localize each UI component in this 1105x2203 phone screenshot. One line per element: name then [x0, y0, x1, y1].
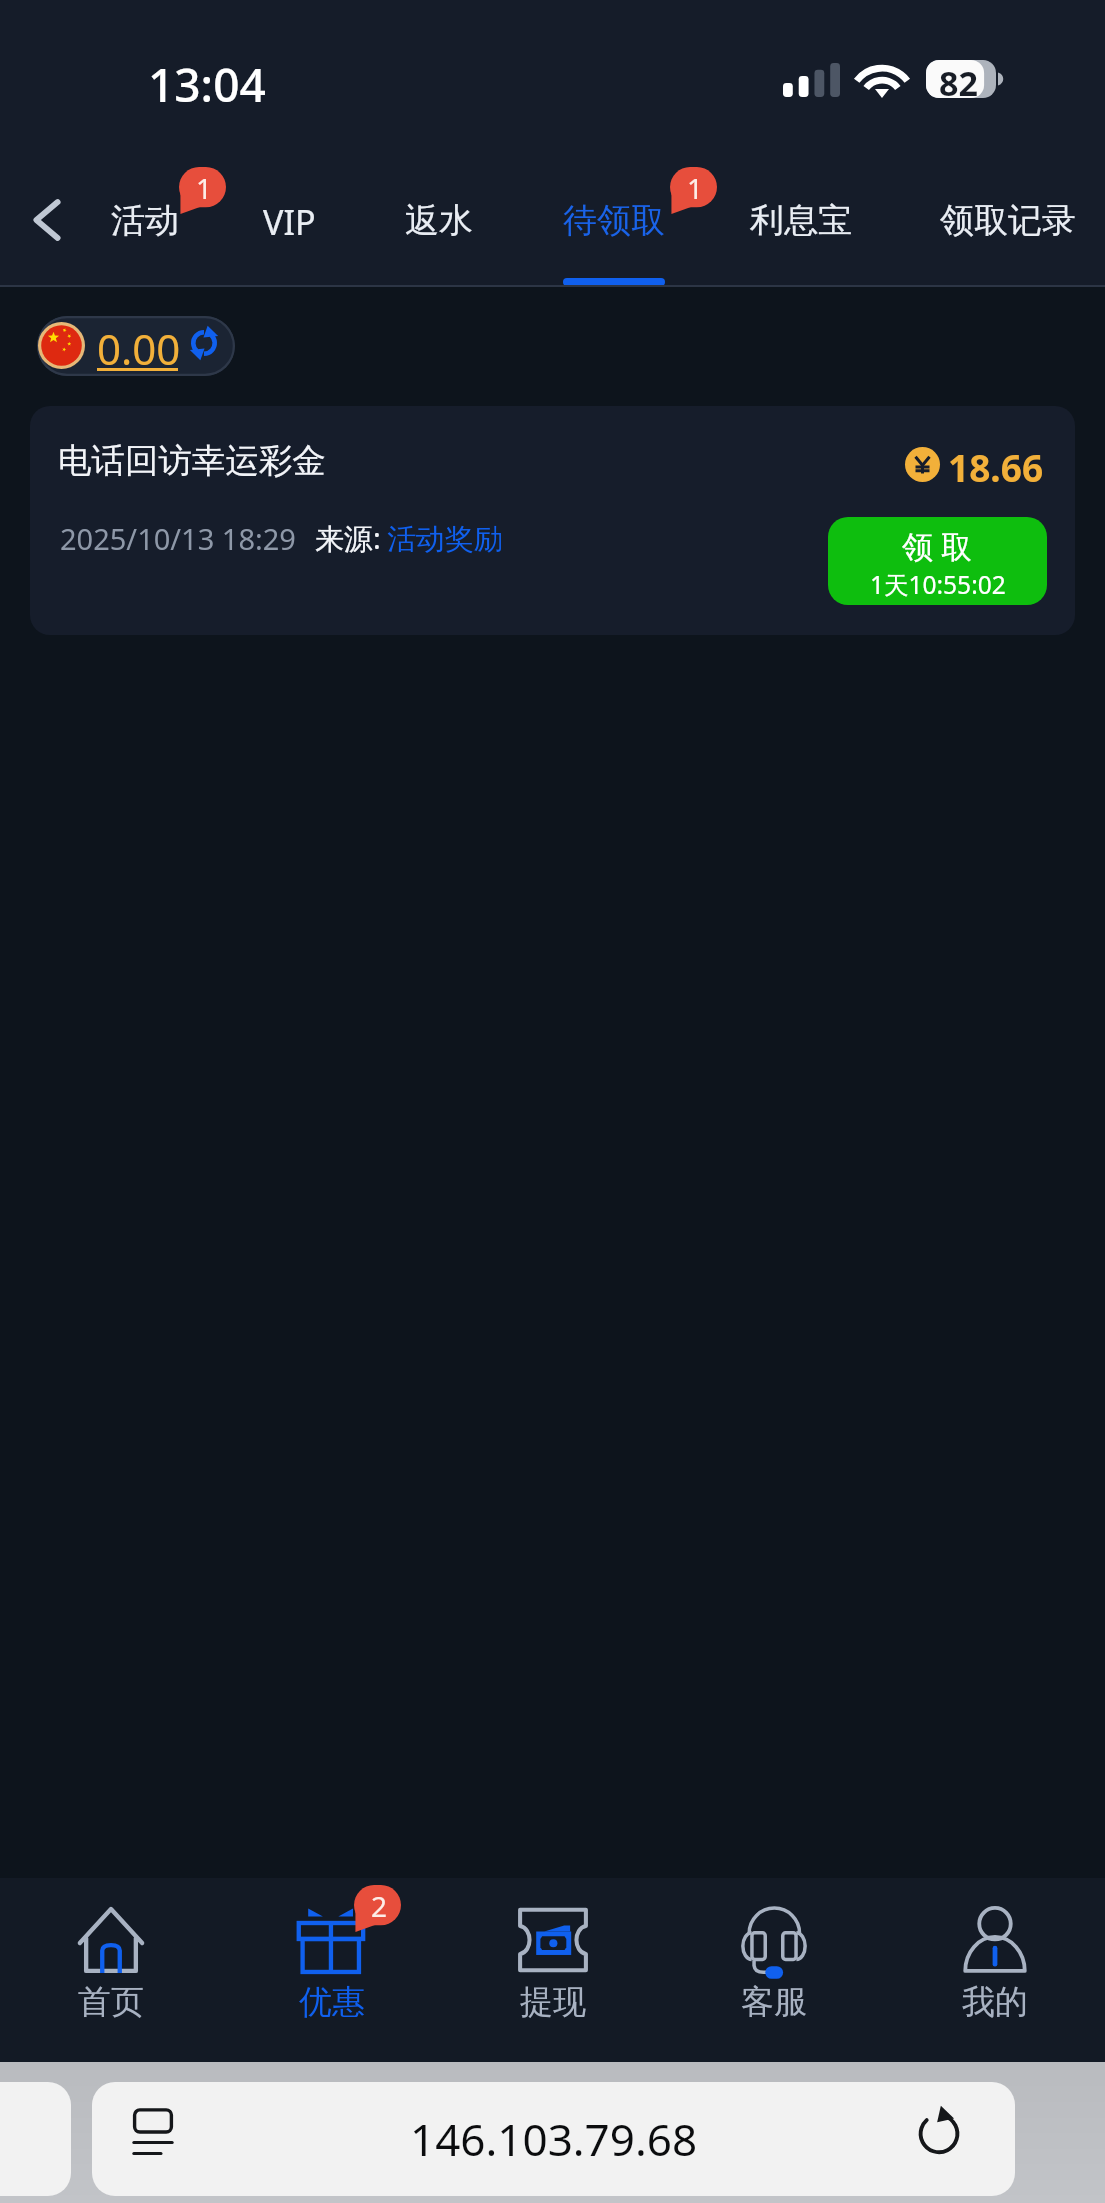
button[interactable]: 首页 — [0, 1878, 221, 2062]
staticText: 18.66 — [948, 442, 1044, 492]
staticText: 1 — [687, 169, 704, 207]
button[interactable]: 返水 — [381, 130, 496, 287]
staticText: 活动 — [111, 199, 179, 242]
staticText: 客服 — [741, 1981, 807, 2023]
staticText: 1天10:55:02 — [870, 568, 1006, 601]
staticText: 82 — [939, 60, 978, 98]
button[interactable]: 客服 — [663, 1878, 884, 2062]
staticText: 优惠 — [299, 1981, 365, 2023]
button[interactable]: 0.00 — [37, 316, 235, 376]
button[interactable]: 电话回访幸运彩金 — [30, 406, 1075, 635]
button[interactable]: 领取记录 — [923, 130, 1093, 287]
staticText: 电话回访幸运彩金 — [58, 440, 326, 482]
staticText: 首页 — [78, 1981, 144, 2023]
button[interactable]: Reader view — [92, 2082, 1015, 2196]
staticText: 领 取 — [902, 525, 973, 567]
other: Reload page — [916, 2108, 962, 2154]
staticText: 活动奖励 — [387, 521, 503, 558]
button[interactable]: 利息宝 — [726, 130, 876, 287]
staticText: 返水 — [405, 199, 473, 242]
staticText: 1 — [196, 169, 213, 207]
button[interactable]: 活动 — [87, 130, 202, 287]
staticText: 利息宝 — [750, 199, 852, 242]
button[interactable]: VIP — [234, 130, 344, 287]
button[interactable]: 优惠 — [221, 1878, 442, 2062]
staticText: 2025/10/13 18:29 — [60, 519, 296, 558]
button[interactable]: 待领取 — [539, 130, 689, 287]
other: Reader view — [133, 2108, 173, 2156]
button[interactable]: 领 取 — [828, 517, 1047, 605]
staticText: 待领取 — [563, 199, 665, 242]
staticText: 提现 — [520, 1981, 586, 2023]
button[interactable]: 我的 — [884, 1878, 1105, 2062]
staticText: 领取记录 — [940, 199, 1076, 242]
staticText: 2 — [371, 1887, 388, 1925]
staticText: 我的 — [962, 1981, 1028, 2023]
staticText: 146.103.79.68 — [410, 2109, 698, 2169]
staticText: VIP — [263, 199, 316, 245]
staticText: 来源: — [315, 518, 381, 558]
other: Refresh balance — [187, 326, 221, 360]
button[interactable]: 提现 — [442, 1878, 663, 2062]
staticText: 0.00 — [97, 320, 181, 376]
staticText: 13:04 — [148, 53, 266, 116]
button[interactable]: Back — [0, 130, 95, 287]
